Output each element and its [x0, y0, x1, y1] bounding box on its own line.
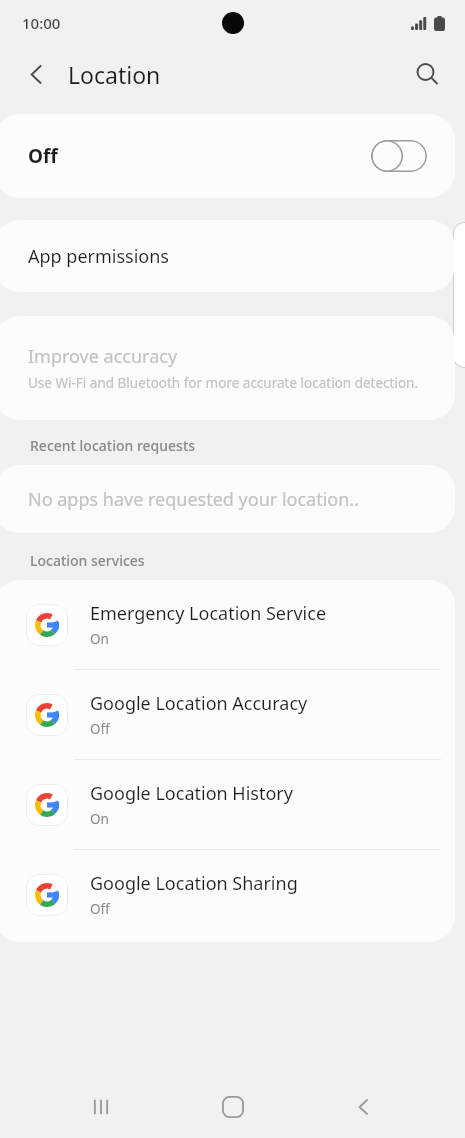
button[interactable]: Search — [403, 50, 451, 98]
staticText: Google Location Sharing — [90, 871, 298, 896]
button[interactable]: Recent apps — [70, 1076, 132, 1138]
staticText: Google Location Accuracy — [90, 691, 308, 716]
staticText: Location services — [30, 551, 145, 570]
button[interactable]: Back — [12, 50, 60, 98]
button[interactable]: Off — [0, 114, 455, 198]
staticText: Recent location requests — [30, 436, 196, 455]
staticText: Location — [68, 59, 161, 90]
button[interactable]: Home — [202, 1076, 264, 1138]
button[interactable]: Back — [333, 1076, 395, 1138]
button[interactable]: Location, off — [371, 140, 427, 172]
button[interactable]: Improve accuracy — [0, 316, 455, 420]
staticText: On — [90, 630, 109, 648]
staticText: Improve accuracy — [28, 344, 178, 369]
staticText: On — [90, 810, 109, 828]
staticText: 10:00 — [22, 13, 61, 33]
button[interactable]: Google Location History — [0, 760, 455, 849]
staticText: Off — [90, 720, 110, 738]
staticText: No apps have requested your location.. — [28, 487, 359, 512]
staticText: Off — [90, 900, 110, 918]
staticText: Use Wi-Fi and Bluetooth for more accurat… — [28, 374, 419, 392]
button[interactable]: App permissions — [0, 220, 455, 292]
staticText: Off — [28, 143, 58, 169]
button[interactable]: Emergency Location Service — [0, 580, 455, 669]
button[interactable]: Google Location Accuracy — [0, 670, 455, 759]
staticText: App permissions — [28, 244, 169, 269]
button[interactable]: Google Location Sharing — [0, 850, 455, 939]
staticText: Google Location History — [90, 781, 293, 806]
staticText: Emergency Location Service — [90, 601, 327, 626]
